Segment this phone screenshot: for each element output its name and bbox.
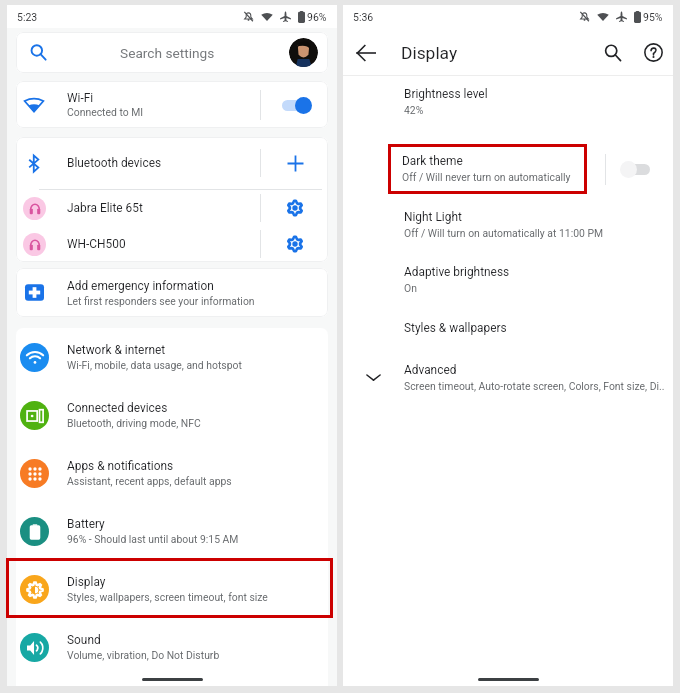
staticText: On (404, 282, 417, 294)
button[interactable]: Battery (16, 502, 328, 560)
staticText: Search settings (120, 45, 215, 61)
staticText: Off / Will turn on automatically at 11:0… (404, 227, 604, 239)
button[interactable]: Device settings (282, 195, 308, 221)
staticText: Advanced (404, 363, 457, 377)
staticText: WH-CH500 (67, 237, 260, 251)
button[interactable]: Styles & wallpapers (343, 321, 673, 335)
staticText: Bluetooth devices (67, 156, 260, 170)
button[interactable]: Apps & notifications (16, 444, 328, 502)
staticText: Brightness level (404, 87, 488, 101)
staticText: Jabra Elite 65t (67, 201, 260, 215)
staticText: Styles & wallpapers (404, 321, 507, 335)
staticText: Assistant, recent apps, default apps (67, 475, 232, 487)
other: Search (30, 44, 47, 61)
button[interactable]: Add emergency information (16, 268, 328, 317)
staticText: Styles, wallpapers, screen timeout, font… (67, 591, 268, 603)
staticText: 96% - Should last until about 9:15 AM (67, 533, 239, 545)
button[interactable]: Bluetooth devices (16, 137, 328, 189)
button[interactable]: Sound (16, 618, 328, 676)
staticText: Apps & notifications (67, 459, 174, 473)
staticText: Volume, vibration, Do Not Disturb (67, 649, 220, 661)
staticText: Battery (67, 517, 105, 531)
staticText: Network & internet (67, 343, 166, 357)
button[interactable]: Connected devices (16, 386, 328, 444)
button[interactable]: Wi-Fi (16, 81, 328, 128)
staticText: Screen timeout, Auto-rotate screen, Colo… (404, 380, 665, 392)
button[interactable]: Search (593, 30, 633, 75)
staticText: Display (401, 43, 593, 63)
button[interactable]: Navigate up (343, 30, 389, 75)
staticText: 96% (307, 11, 327, 23)
staticText: Add emergency information (67, 279, 214, 293)
button[interactable]: Night Light (343, 210, 673, 239)
button[interactable]: WH-CH500 (16, 226, 328, 262)
staticText: Off / Will never turn on automatically (402, 171, 571, 183)
button[interactable]: Help (633, 30, 673, 75)
staticText: Connected devices (67, 401, 168, 415)
button[interactable]: Search (16, 32, 328, 73)
button[interactable]: Adaptive brightness (343, 265, 673, 294)
staticText: 95% (643, 11, 663, 23)
staticText: 5:36 (353, 11, 374, 23)
staticText: Wi-Fi (67, 91, 94, 105)
staticText: Bluetooth, driving mode, NFC (67, 417, 201, 429)
staticText: Night Light (404, 210, 462, 224)
staticText: Display (67, 575, 106, 589)
staticText: Sound (67, 633, 101, 647)
staticText: Let first responders see your informatio… (67, 295, 255, 307)
button[interactable]: Pair new device (282, 150, 308, 176)
button[interactable]: Advanced (343, 363, 673, 392)
button[interactable]: Brightness level (343, 87, 673, 116)
button[interactable]: Dark theme (388, 144, 587, 194)
staticText: 5:23 (17, 11, 38, 23)
button[interactable]: Turn on (620, 159, 654, 179)
staticText: 42% (404, 104, 424, 116)
staticText: Connected to MI (67, 106, 144, 118)
staticText: Dark theme (402, 154, 463, 168)
button[interactable]: Jabra Elite 65t (16, 190, 328, 226)
button[interactable]: Device settings (282, 231, 308, 257)
staticText: Adaptive brightness (404, 265, 510, 279)
button[interactable]: Turn off (278, 95, 312, 115)
staticText: Wi-Fi, mobile, data usage, and hotspot (67, 359, 242, 371)
button[interactable]: Display (16, 560, 328, 618)
button[interactable]: Network & internet (16, 328, 328, 386)
